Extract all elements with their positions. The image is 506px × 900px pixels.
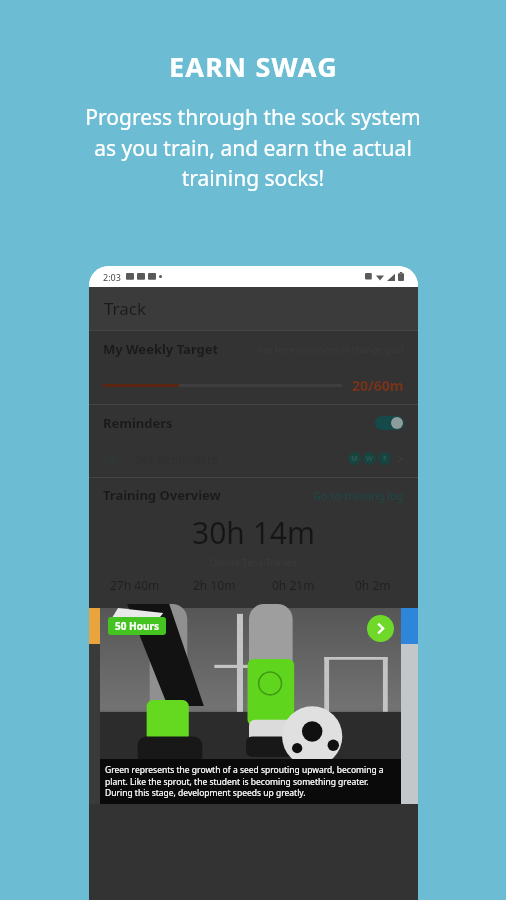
staticText: 27h 40m	[110, 577, 160, 593]
button[interactable]: Go to training log	[313, 488, 404, 503]
button[interactable]: My Weekly Target	[89, 331, 418, 404]
staticText: Green represents the growth of a seed sp…	[105, 764, 396, 799]
button[interactable]: Reminder bell	[89, 440, 418, 477]
staticText: Reminders	[103, 414, 173, 432]
staticText: EARN SWAG	[169, 48, 338, 85]
staticText: W	[366, 454, 373, 464]
staticText: Progress through the sock system as you …	[18, 103, 488, 192]
staticText: 2:03	[103, 271, 121, 283]
staticText: My Weekly Target	[103, 340, 219, 358]
staticText: F	[383, 454, 387, 464]
staticText: 0h 2m	[355, 577, 391, 593]
staticText: 2h 10m	[193, 577, 236, 593]
staticText: 30h 14m	[192, 512, 316, 553]
staticText: Training Overview	[103, 486, 221, 504]
button[interactable]: Next sock level	[367, 615, 394, 642]
button[interactable]: Reminders	[89, 405, 418, 440]
staticText: 20/60m	[352, 376, 404, 395]
staticText: 50 Hours	[115, 619, 159, 633]
staticText: 0h 21m	[272, 577, 315, 593]
button[interactable]: 50 Hours	[100, 608, 401, 804]
staticText: M	[351, 454, 358, 464]
staticText: Track	[104, 297, 147, 320]
